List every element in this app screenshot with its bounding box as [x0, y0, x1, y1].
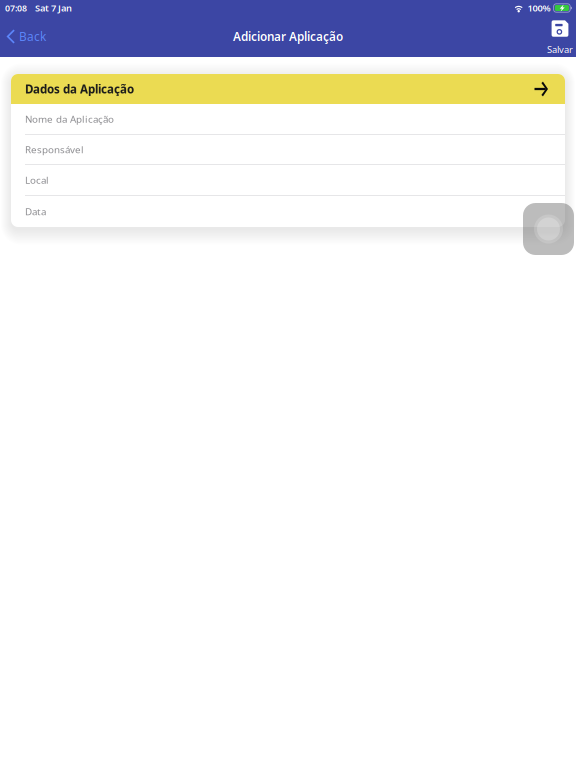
staticText: Data — [25, 205, 46, 218]
button[interactable]: Data — [11, 196, 565, 227]
staticText: 07:08 — [5, 2, 27, 14]
staticText: Nome da Aplicação — [25, 112, 114, 126]
staticText: 100% — [528, 2, 551, 14]
staticText: Dados da Aplicação — [25, 81, 134, 97]
button[interactable]: Dados da Aplicação — [11, 74, 565, 104]
staticText: Adicionar Aplicação — [233, 28, 343, 44]
staticText: Responsável — [25, 143, 84, 156]
staticText: Salvar — [547, 43, 573, 56]
button[interactable]: Responsável — [11, 135, 565, 165]
staticText: Back — [19, 28, 46, 45]
staticText: Sat 7 Jan — [35, 2, 72, 14]
staticText: Local — [25, 173, 49, 187]
button[interactable]: Nome da Aplicação — [11, 104, 565, 135]
button[interactable]: Back — [0, 20, 56, 52]
button[interactable]: Salvar — [539, 16, 576, 57]
button[interactable]: Local — [11, 165, 565, 196]
button[interactable]: AssistiveTouch — [523, 203, 574, 255]
